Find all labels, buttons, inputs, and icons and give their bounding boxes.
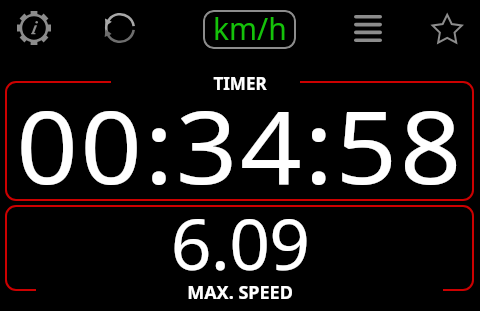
staticText: 00:34:58 bbox=[0, 76, 480, 214]
button[interactable]: Reset bbox=[100, 8, 140, 48]
button[interactable]: Menu bbox=[348, 8, 388, 48]
staticText: 6.09 bbox=[0, 195, 480, 290]
staticText: km/h bbox=[213, 10, 287, 47]
button[interactable]: km/h bbox=[203, 10, 296, 49]
staticText: TIMER bbox=[0, 72, 480, 95]
button[interactable]: Info bbox=[14, 8, 54, 48]
button[interactable]: Favorite bbox=[427, 8, 467, 48]
staticText: MAX. SPEED bbox=[0, 280, 480, 305]
